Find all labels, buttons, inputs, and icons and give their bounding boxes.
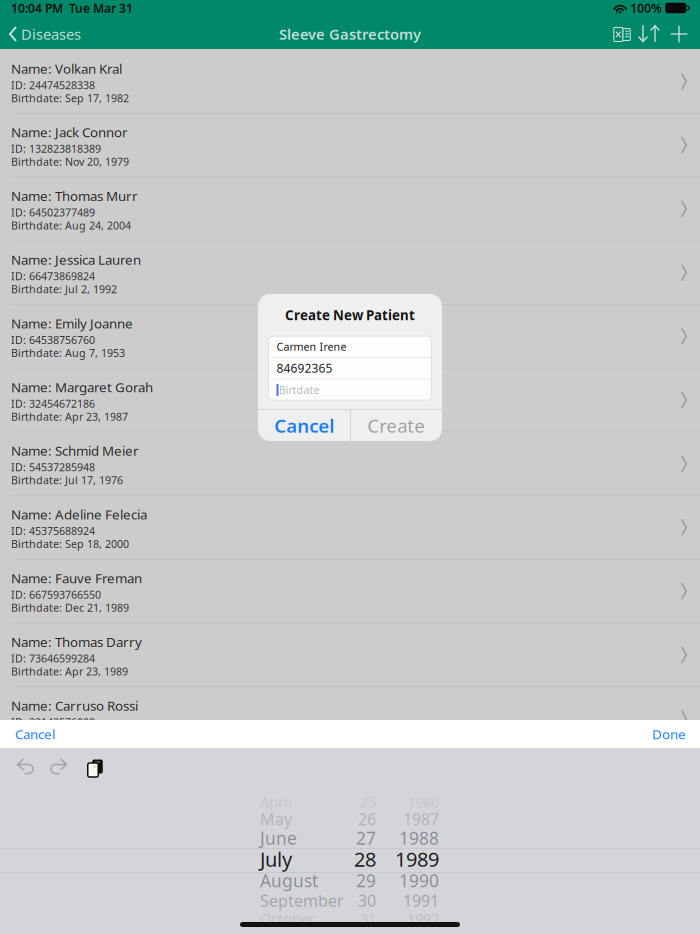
staticText: ID: 64538756760 [11,333,95,347]
staticText: Name: Jack Connor [11,123,128,141]
staticText: ID: 73646599284 [11,651,95,665]
staticText: 1989 [395,846,439,872]
staticText: 25 [360,792,376,811]
staticText: ID: 24474528338 [11,78,95,92]
staticText: 1987 [403,808,439,830]
staticText: Birthdate: Jul 17, 1976 [11,473,123,487]
button[interactable]: Name: Volkan Kral [0,50,700,113]
staticText: August [260,869,318,892]
staticText: Birthdate: Apr 23, 1989 [11,664,128,678]
staticText: July [260,846,292,872]
button[interactable]: Add patient [663,17,695,51]
button[interactable]: Name: Fauve Freman [0,560,700,623]
staticText: Name: Schmid Meier [11,442,139,459]
button[interactable]: Done [638,720,700,748]
staticText: May [260,808,292,830]
staticText: Sleeve Gastrectomy [279,24,421,44]
staticText: ID: 66473869824 [11,269,95,283]
staticText: Birthdate: Sep 17, 1982 [11,91,129,105]
staticText: Name: Jessica Lauren [11,251,141,268]
staticText: Name: Margaret Gorah [11,378,153,396]
staticText: 10:04 PM [11,0,63,16]
staticText: Birtdate [278,383,319,397]
staticText: Name: Thomas Murr [11,187,138,205]
button[interactable]: Diseases [0,17,90,51]
staticText: 100% [627,0,665,16]
button[interactable]: Redo [42,751,76,781]
staticText: 1990 [399,869,439,892]
button[interactable]: Name: Thomas Murr [0,177,700,240]
staticText: Done [652,725,686,743]
staticText: Birthdate: Jul 2, 1992 [11,282,117,296]
staticText: Name: Carruso Rossi [11,697,138,714]
staticText: Cancel [274,413,334,438]
button[interactable]: Name: Emily Joanne [0,305,700,368]
staticText: Name: Fauve Freman [11,569,142,587]
staticText: ID: 32454672186 [11,396,95,411]
staticText: Birthdate: Aug 7, 1953 [11,346,125,360]
staticText: ID: 64502377489 [11,205,95,219]
button[interactable]: Name: Jessica Lauren [0,241,700,304]
button[interactable]: Cancel [258,410,350,441]
button[interactable]: Name: Thomas Darry [0,623,700,686]
staticText: 29 [356,869,376,892]
staticText: Birthdate: Sep 18, 2000 [11,537,129,551]
staticText: Birthdate: Nov 20, 1979 [11,155,129,169]
button[interactable]: Create [351,410,442,441]
staticText: April [260,792,292,811]
staticText: 1991 [403,890,439,911]
staticText: June [260,826,297,849]
staticText: September [260,890,344,911]
staticText: Create [367,413,425,438]
button[interactable]: Sort [635,17,663,51]
button[interactable]: Name: Adeline Felecia [0,496,700,559]
staticText: October [260,909,315,928]
staticText: 1986 [407,792,439,811]
staticText: Create New Patient [285,306,415,324]
staticText: Name: Volkan Kral [11,60,122,77]
staticText: 30 [358,890,376,911]
staticText: ID: 667593766550 [11,587,101,602]
staticText: Birthdate: Mar 3, 1969 [11,728,124,742]
button[interactable]: Undo [8,751,42,781]
staticText: Name: Emily Joanne [11,314,133,332]
staticText: ID: 32143576008 [11,715,95,729]
staticText: ID: 132823818389 [11,142,101,156]
staticText: ID: 54537285948 [11,460,95,474]
button[interactable]: Cancel [0,720,70,748]
button[interactable]: Paste [76,751,110,781]
staticText: 26 [358,808,376,830]
staticText: 27 [356,826,376,849]
staticText: Birthdate: Apr 23, 1987 [11,409,128,424]
button[interactable]: Name: Margaret Gorah [0,368,700,431]
button[interactable]: Name: Carruso Rossi [0,687,700,750]
staticText: Name: Thomas Darry [11,633,142,651]
button[interactable]: Export to Excel [601,17,635,51]
staticText: ID: 45375688924 [11,524,95,538]
staticText: Carmen Irene [276,339,346,354]
staticText: 1988 [399,826,439,849]
staticText: 1992 [407,909,439,928]
button[interactable]: Name: Jack Connor [0,114,700,177]
staticText: Diseases [21,24,81,44]
staticText: 28 [354,846,376,872]
staticText: Birthdate: Aug 24, 2004 [11,218,131,232]
staticText: Cancel [15,725,55,743]
staticText: 84692365 [276,360,332,376]
button[interactable]: Name: Schmid Meier [0,432,700,495]
staticText: Name: Adeline Felecia [11,505,147,523]
staticText: Birthdate: Dec 21, 1989 [11,600,129,615]
staticText: Tue Mar 31 [63,0,133,16]
staticText: 31 [360,909,376,928]
